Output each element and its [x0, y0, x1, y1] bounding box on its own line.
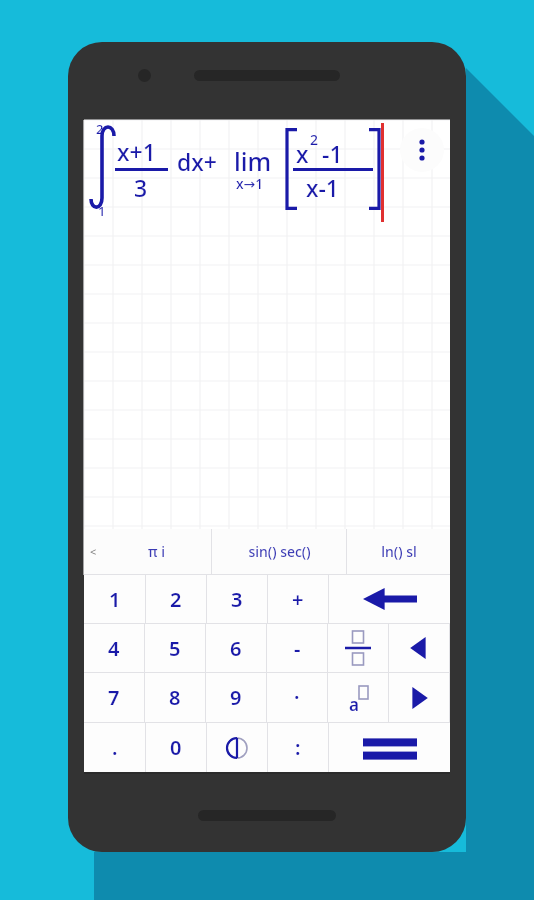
- button[interactable]: :: [268, 723, 328, 772]
- staticText: dx+: [177, 146, 217, 177]
- staticText: x+1: [117, 136, 156, 167]
- button[interactable]: 7: [84, 673, 144, 722]
- button[interactable]: Previous page: [84, 529, 102, 574]
- button[interactable]: 4: [84, 624, 144, 672]
- staticText: lim: [234, 144, 272, 178]
- button[interactable]: Right: [389, 673, 449, 722]
- staticText: 5: [169, 635, 181, 662]
- button[interactable]: -: [267, 624, 327, 672]
- staticText: <: [90, 544, 97, 559]
- staticText: a: [349, 693, 359, 716]
- staticText: x: [296, 138, 309, 169]
- staticText: ·: [294, 684, 300, 711]
- staticText: 3: [231, 586, 243, 613]
- button[interactable]: 8: [145, 673, 205, 722]
- button[interactable]: 6: [206, 624, 266, 672]
- button[interactable]: .: [84, 723, 145, 772]
- button[interactable]: Equals: [329, 723, 450, 772]
- button[interactable]: More options: [400, 128, 444, 172]
- button[interactable]: ln() sl: [347, 529, 450, 574]
- staticText: 1: [109, 586, 121, 613]
- button[interactable]: 1: [84, 575, 145, 623]
- button[interactable]: 0: [146, 723, 206, 772]
- staticText: ln() sl: [381, 542, 417, 561]
- button[interactable]: Backspace: [329, 575, 450, 623]
- staticText: 2: [170, 586, 182, 613]
- staticText: -1: [322, 138, 343, 169]
- staticText: π i: [148, 542, 165, 561]
- button[interactable]: 3: [207, 575, 267, 623]
- button[interactable]: Left: [389, 624, 449, 672]
- button[interactable]: ·: [267, 673, 327, 722]
- staticText: x→1: [236, 174, 264, 193]
- staticText: 2: [96, 120, 104, 138]
- button[interactable]: 5: [145, 624, 205, 672]
- staticText: x-1: [306, 172, 340, 203]
- staticText: 6: [230, 635, 242, 662]
- staticText: 7: [108, 684, 120, 711]
- button[interactable]: 9: [206, 673, 266, 722]
- staticText: :: [295, 734, 301, 761]
- staticText: 9: [230, 684, 242, 711]
- button[interactable]: Power: [328, 673, 388, 722]
- staticText: 8: [169, 684, 181, 711]
- button[interactable]: Parentheses: [207, 723, 267, 772]
- staticText: .: [112, 734, 118, 761]
- button[interactable]: Fraction: [328, 624, 388, 672]
- staticText: 2: [310, 130, 319, 149]
- staticText: sin() sec(): [248, 542, 311, 561]
- button[interactable]: +: [268, 575, 328, 623]
- staticText: +: [292, 586, 304, 613]
- staticText: 4: [108, 635, 120, 662]
- staticText: 0: [170, 734, 182, 761]
- staticText: -: [294, 635, 301, 662]
- staticText: 3: [134, 172, 148, 203]
- button[interactable]: sin() sec(): [212, 529, 346, 574]
- staticText: 1: [98, 202, 106, 220]
- button[interactable]: 2: [146, 575, 206, 623]
- button[interactable]: π i: [102, 529, 211, 574]
